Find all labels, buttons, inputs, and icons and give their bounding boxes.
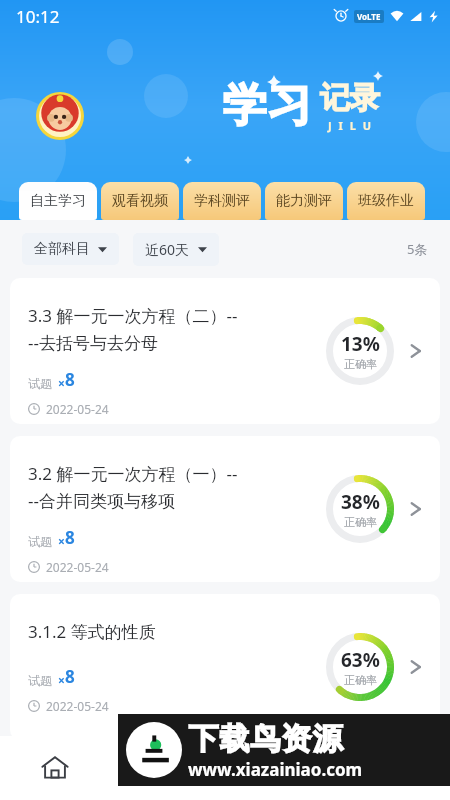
- staticText: 自主学习: [30, 192, 86, 210]
- staticText: 正确率: [344, 357, 377, 371]
- staticText: 63%: [341, 647, 380, 673]
- staticText: 全部科目: [34, 240, 90, 258]
- button[interactable]: 3.1.2 等式的性质: [10, 594, 440, 740]
- button[interactable]: 学科测评: [183, 182, 261, 220]
- staticText: 13%: [341, 331, 380, 357]
- staticText: 试题: [28, 673, 52, 688]
- staticText: 班级作业: [358, 192, 414, 210]
- staticText: 记录: [320, 79, 380, 117]
- staticText: 学科测评: [194, 192, 250, 210]
- staticText: J I L U: [328, 118, 373, 133]
- staticText: 2022-05-24: [46, 559, 109, 575]
- staticText: --合并同类项与移项: [28, 489, 175, 512]
- button[interactable]: 观看视频: [101, 182, 179, 220]
- staticText: 10:12: [16, 5, 60, 28]
- staticText: --去括号与去分母: [28, 331, 158, 354]
- staticText: 8: [65, 526, 75, 549]
- button[interactable]: Profile avatar: [36, 92, 84, 140]
- staticText: 试题: [28, 534, 52, 549]
- button[interactable]: 全部科目: [22, 233, 119, 265]
- staticText: ×: [58, 533, 65, 549]
- staticText: 5条: [407, 240, 428, 258]
- staticText: 正确率: [344, 515, 377, 529]
- staticText: 2022-05-24: [46, 401, 109, 417]
- staticText: ×: [58, 672, 65, 688]
- staticText: 8: [65, 665, 75, 688]
- staticText: 8: [65, 368, 75, 391]
- staticText: 3.2 解一元一次方程（一）--: [28, 462, 238, 485]
- staticText: 2022-05-24: [46, 698, 109, 714]
- staticText: www.xiazainiao.com: [188, 758, 363, 781]
- button[interactable]: 班级作业: [347, 182, 425, 220]
- button[interactable]: 自主学习: [19, 182, 97, 220]
- staticText: 正确率: [344, 673, 377, 687]
- staticText: 能力测评: [276, 192, 332, 210]
- staticText: 下载鸟资源: [188, 720, 343, 758]
- staticText: ×: [58, 375, 65, 391]
- staticText: VoLTE: [357, 11, 381, 22]
- staticText: 近60天: [145, 240, 190, 259]
- staticText: 试题: [28, 376, 52, 391]
- button[interactable]: Home: [0, 736, 110, 800]
- staticText: 学习: [222, 78, 312, 133]
- button[interactable]: 能力测评: [265, 182, 343, 220]
- staticText: 3.3 解一元一次方程（二）--: [28, 304, 238, 327]
- button[interactable]: 3.3 解一元一次方程（二）--: [10, 278, 440, 424]
- staticText: 观看视频: [112, 192, 168, 210]
- staticText: 3.1.2 等式的性质: [28, 620, 156, 643]
- button[interactable]: 3.2 解一元一次方程（一）--: [10, 436, 440, 582]
- staticText: 38%: [341, 489, 380, 515]
- button[interactable]: 近60天: [133, 233, 219, 266]
